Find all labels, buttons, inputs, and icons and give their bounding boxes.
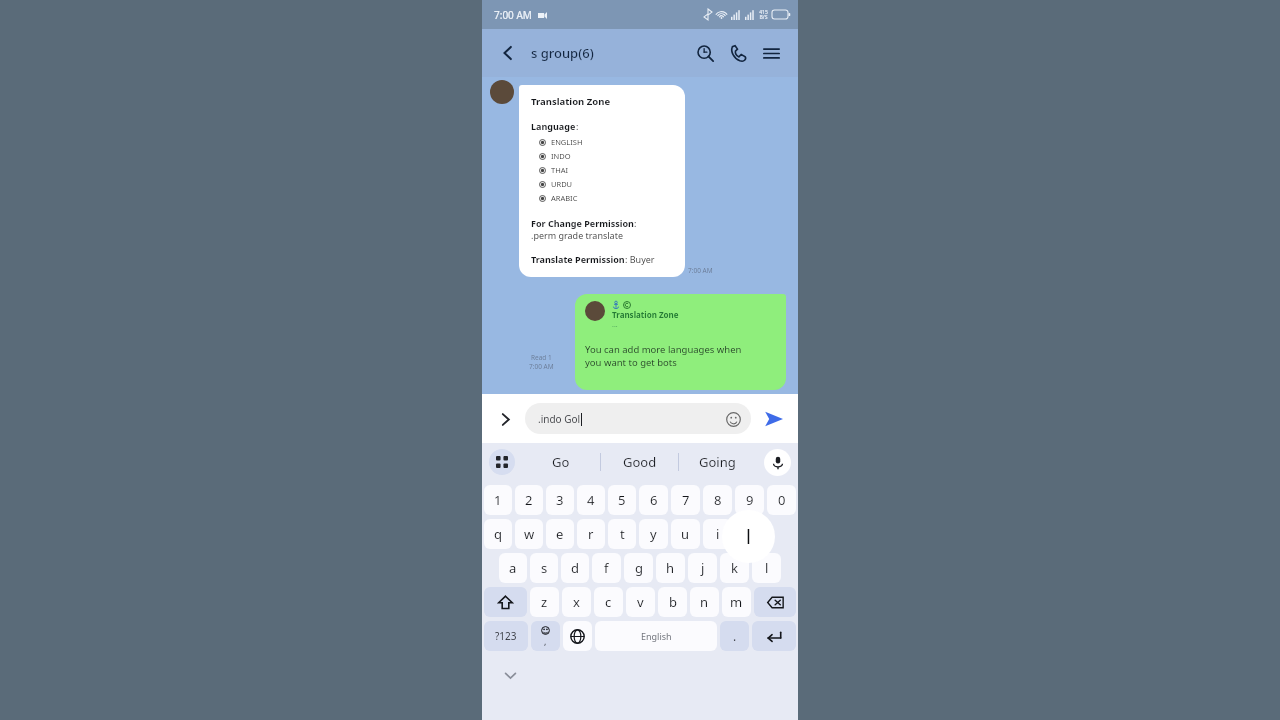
button[interactable]: Voice input [756, 443, 798, 481]
button[interactable]: d [561, 553, 589, 583]
staticText: : [576, 120, 579, 132]
button[interactable]: m [722, 587, 751, 617]
button[interactable]: v [626, 587, 655, 617]
staticText: l [765, 559, 769, 577]
staticText: x [573, 593, 580, 611]
button[interactable]: 8 [703, 485, 732, 515]
staticText: t [620, 525, 625, 543]
staticText: ENGLISH [551, 137, 583, 147]
staticText: You can add more languages when you want… [585, 343, 742, 369]
button[interactable]: .indo Gol [525, 403, 751, 434]
staticText: 7:00 AM [494, 8, 532, 22]
button[interactable]: i [703, 519, 732, 549]
button[interactable]: Menu [758, 40, 784, 66]
button[interactable]: 5 [608, 485, 636, 515]
staticText: 9 [746, 491, 754, 509]
button[interactable]: g [624, 553, 653, 583]
button[interactable]: w [515, 519, 543, 549]
button[interactable]: 4 [577, 485, 605, 515]
button[interactable]: ?123 [484, 621, 528, 651]
button[interactable]: l [752, 553, 781, 583]
staticText: Going [699, 453, 736, 471]
button[interactable]: Translation Zone [519, 85, 685, 277]
button[interactable]: Going [679, 443, 756, 481]
button[interactable]: e [546, 519, 574, 549]
button[interactable]: u [671, 519, 700, 549]
staticText: f [604, 559, 609, 577]
staticText: o [746, 525, 754, 543]
staticText: : [634, 217, 637, 229]
button[interactable]: h [656, 553, 685, 583]
staticText: h [666, 559, 675, 577]
button[interactable]: Go [522, 443, 600, 481]
staticText: URDU [551, 179, 573, 189]
staticText: English [641, 630, 672, 642]
button[interactable]: j [688, 553, 717, 583]
button[interactable]: r [577, 519, 605, 549]
button[interactable]: 7 [671, 485, 700, 515]
button[interactable]: f [592, 553, 621, 583]
button[interactable]: t [608, 519, 636, 549]
button[interactable]: 2 [515, 485, 543, 515]
button[interactable]: x [562, 587, 591, 617]
button[interactable]: English [595, 621, 717, 651]
staticText: e [556, 525, 564, 543]
staticText: : Buyer [625, 253, 655, 265]
staticText: Read 1 [531, 353, 552, 362]
staticText: Language [531, 120, 576, 132]
button[interactable]: c [594, 587, 623, 617]
staticText: 7:00 AM [529, 362, 554, 371]
button[interactable]: y [639, 519, 668, 549]
button[interactable]: . [720, 621, 749, 651]
button[interactable]: Hide keyboard [482, 663, 538, 687]
button[interactable]: Change language [563, 621, 592, 651]
button[interactable]: Shift [484, 587, 527, 617]
staticText: 5 [618, 491, 626, 509]
staticText: Translation Zone [531, 95, 611, 108]
button[interactable]: z [530, 587, 559, 617]
staticText: r [588, 525, 594, 543]
button[interactable]: s [530, 553, 558, 583]
button[interactable]: Backspace [754, 587, 796, 617]
button[interactable]: Translation Zone [575, 294, 786, 390]
button[interactable]: Expand [492, 406, 518, 432]
button[interactable] [767, 519, 796, 549]
button[interactable]: 3 [546, 485, 574, 515]
button[interactable]: Back [496, 41, 520, 65]
button[interactable]: Emoji and comma [531, 621, 560, 651]
staticText: .perm grade translate [531, 229, 623, 241]
staticText: INDO [551, 151, 571, 161]
staticText: d [571, 559, 579, 577]
staticText: For Change Permission [531, 217, 634, 229]
staticText: b [669, 593, 677, 611]
button[interactable]: s group(6) [531, 44, 594, 62]
button[interactable]: 6 [639, 485, 668, 515]
button[interactable]: k [720, 553, 749, 583]
staticText: q [494, 525, 502, 543]
button[interactable]: 1 [484, 485, 512, 515]
staticText: 415 B/S [759, 9, 768, 20]
button[interactable]: 0 [767, 485, 796, 515]
staticText: 6 [650, 491, 658, 509]
button[interactable]: Search history [692, 40, 718, 66]
button[interactable]: Enter [752, 621, 796, 651]
staticText: Translation Zone [612, 309, 679, 320]
button[interactable]: Emoji [724, 410, 742, 428]
staticText: 2 [525, 491, 533, 509]
button[interactable]: a [499, 553, 527, 583]
button[interactable]: 9 [735, 485, 764, 515]
button[interactable]: Call [725, 40, 751, 66]
staticText: m [730, 593, 743, 611]
staticText: s [541, 559, 548, 577]
staticText: THAI [551, 165, 569, 175]
button[interactable]: q [484, 519, 512, 549]
button[interactable]: Keyboard options [482, 443, 522, 481]
button[interactable]: b [658, 587, 687, 617]
button[interactable]: o [735, 519, 764, 549]
staticText: c [605, 593, 612, 611]
staticText: ... [612, 320, 618, 330]
staticText: ?123 [495, 629, 517, 643]
button[interactable]: Send [760, 405, 788, 433]
button[interactable]: Good [601, 443, 678, 481]
button[interactable]: n [690, 587, 719, 617]
